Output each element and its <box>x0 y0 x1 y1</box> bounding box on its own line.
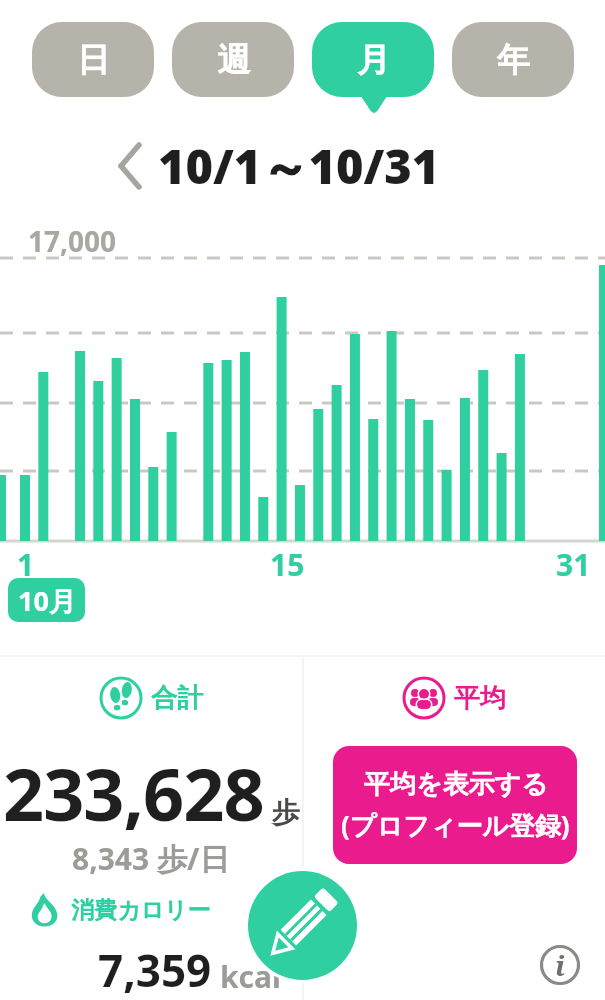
staticText: 233,628 <box>3 744 264 842</box>
button[interactable]: 10月 <box>8 578 85 622</box>
staticText: 歩 <box>272 795 300 830</box>
button[interactable]: 日 <box>32 22 154 97</box>
button[interactable] <box>248 871 357 980</box>
button[interactable]: 年 <box>452 22 574 97</box>
staticText: 10/1～10/31 <box>158 134 440 198</box>
staticText: 消費カロリー <box>71 896 211 925</box>
staticText: 8,343 歩/日 <box>72 838 230 879</box>
staticText: 10月 <box>18 582 76 619</box>
staticText: kcal <box>220 956 281 997</box>
staticText: 1 <box>17 544 35 585</box>
staticText: 31 <box>556 544 591 585</box>
staticText: 15 <box>270 544 305 585</box>
staticText: (プロフィール登録) <box>341 807 570 843</box>
staticText: 17,000 <box>28 222 117 260</box>
button[interactable]: i <box>539 944 581 986</box>
staticText: 週 <box>217 39 250 81</box>
staticText: 平均を表示する <box>364 768 548 801</box>
staticText: 合計 <box>151 682 203 715</box>
button[interactable]: 月 <box>312 22 434 97</box>
staticText: i <box>555 946 565 984</box>
button[interactable]: 週 <box>172 22 294 97</box>
staticText: 年 <box>497 39 530 81</box>
button[interactable]: 平均を表示する <box>333 746 577 864</box>
staticText: 7,359 <box>98 940 212 1000</box>
button[interactable]: 10/1～10/31 <box>114 134 440 198</box>
staticText: 平均 <box>454 682 506 715</box>
staticText: 月 <box>357 39 390 81</box>
staticText: 日 <box>77 39 110 81</box>
